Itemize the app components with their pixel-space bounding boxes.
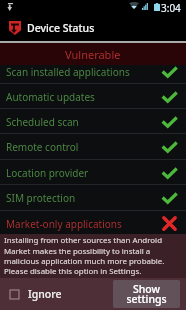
staticText: Vulnerable <box>65 47 121 62</box>
button[interactable]: Location provider <box>0 160 186 185</box>
button[interactable]: Automatic updates <box>0 84 186 109</box>
staticText: Ignore <box>28 287 62 301</box>
staticText: Scan installed applications <box>6 65 130 79</box>
button[interactable]: Scan installed applications <box>0 59 186 84</box>
staticText: Market-only applications <box>6 217 122 231</box>
button[interactable]: SIM protection <box>0 185 186 211</box>
staticText: Installing from other sources than Andro… <box>4 235 165 276</box>
staticText: Automatic updates <box>6 90 95 104</box>
button[interactable]: Show settings <box>113 280 180 308</box>
staticText: Remote control <box>6 140 79 154</box>
button[interactable]: Ignore <box>0 283 68 305</box>
staticText: Scheduled scan <box>6 115 79 129</box>
staticText: Show settings <box>126 282 167 306</box>
staticText: 3:04 <box>161 1 181 15</box>
other: App logo <box>9 21 21 35</box>
button[interactable]: Remote control <box>0 134 186 160</box>
button[interactable]: Scheduled scan <box>0 109 186 134</box>
staticText: Device Status <box>27 21 95 35</box>
button[interactable]: Market-only applications <box>0 211 186 236</box>
staticText: Location provider <box>6 166 89 180</box>
staticText: SIM protection <box>6 191 76 205</box>
